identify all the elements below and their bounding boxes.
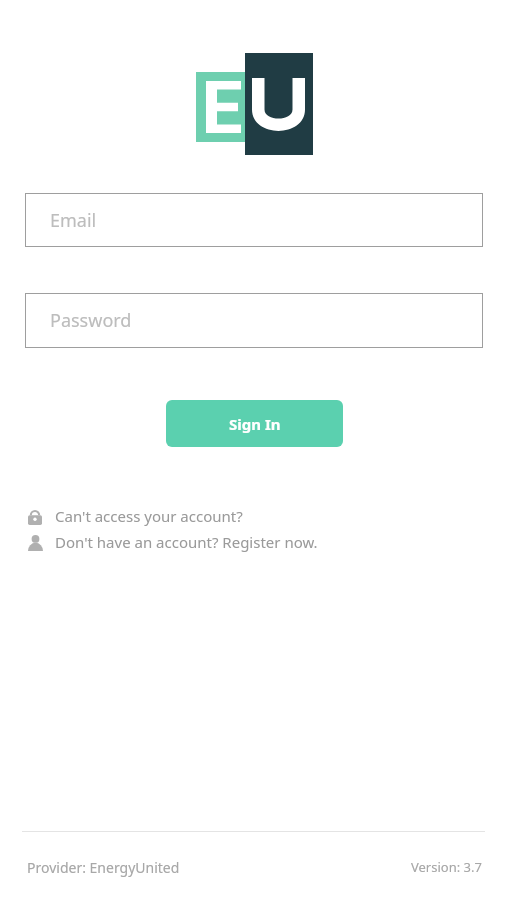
staticText: Can't access your account? (55, 506, 243, 526)
staticText: Version: 3.7 (411, 858, 482, 876)
button[interactable]: Email (25, 193, 483, 247)
staticText: Password (50, 308, 132, 333)
button[interactable]: Can't access your account (20, 503, 350, 529)
staticText: Provider: EnergyUnited (27, 858, 180, 877)
button[interactable]: Password (25, 293, 483, 348)
other: Register now (28, 534, 43, 551)
other: Can't access your account (28, 508, 42, 525)
staticText: Email (50, 208, 97, 233)
button[interactable]: Sign In (166, 400, 343, 447)
staticText: Don't have an account? Register now. (55, 532, 318, 552)
staticText: Sign In (229, 414, 281, 434)
button[interactable]: Register now (20, 529, 370, 555)
